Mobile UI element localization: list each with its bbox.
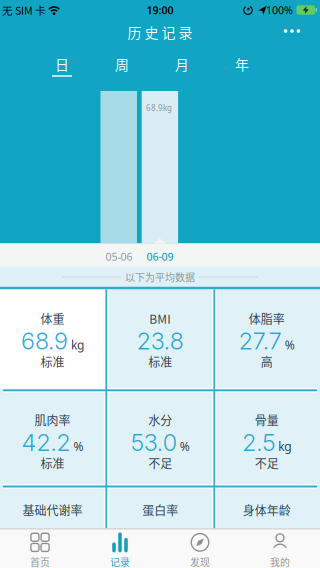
staticText: 月 [175,54,189,74]
staticText: 基础代谢率 [23,501,83,519]
staticText: 68.9 [21,327,68,355]
button[interactable]: 基础代谢率 [1,481,105,568]
staticText: 2.5 [242,428,275,457]
staticText: kg [275,438,291,454]
staticText: 高 [261,353,273,370]
staticText: 发现 [190,555,210,568]
button[interactable]: 首页 [8,531,72,568]
staticText: 水分 [148,411,172,429]
staticText: % [177,438,190,454]
staticText: 年 [235,54,249,74]
staticText: 蛋白率 [142,501,178,519]
staticText: % [71,438,84,454]
staticText: % [282,337,295,353]
staticText: 以下为平均数据 [125,270,195,284]
staticText: 不足 [255,454,279,472]
button[interactable]: 体重 [1,289,105,386]
button[interactable]: 肌肉率 [1,391,105,488]
staticText: 标准 [41,353,65,370]
button[interactable]: 水分 [108,391,212,488]
staticText: 周 [115,54,129,74]
button[interactable]: 蛋白率 [108,481,212,568]
staticText: 23.8 [137,327,184,355]
button[interactable]: 周 [102,50,142,80]
staticText: 身体年龄 [243,501,291,519]
button[interactable]: 月 [162,50,202,80]
button[interactable]: 体脂率 [215,289,319,386]
button[interactable]: 05-06 [99,246,139,266]
button[interactable]: 身体年龄 [215,481,319,568]
staticText: 06-09 [146,249,173,264]
staticText: 19:00 [146,3,173,17]
button[interactable]: 我的 [248,531,312,568]
staticText: 53.0 [131,428,177,457]
button[interactable]: BMI [108,289,212,386]
staticText: 42.2 [22,428,71,457]
button[interactable]: 记录 [88,531,152,568]
staticText: 我的 [270,555,290,568]
staticText: 标准 [41,454,65,472]
button[interactable]: 骨量 [215,391,319,488]
staticText: 无 SIM 卡 [2,2,46,18]
staticText: 标准 [148,353,172,370]
staticText: kg [68,337,84,353]
staticText: 日 [55,54,69,74]
button[interactable]: 发现 [168,531,232,568]
staticText: 历 史 记 录 [127,22,192,42]
staticText: 不足 [148,454,172,472]
staticText: 骨量 [255,411,279,429]
staticText: BMI [149,310,171,327]
staticText: 首页 [30,555,50,568]
staticText: 27.7 [239,327,282,355]
button[interactable]: More [275,17,309,45]
button[interactable]: 06-09 record [142,91,178,243]
staticText: 05-06 [105,249,132,264]
staticText: 体脂率 [249,310,285,327]
button[interactable]: 年 [222,50,262,80]
staticText: 记录 [110,555,130,568]
button[interactable]: 日 [42,50,82,80]
staticText: 100% [266,3,293,17]
staticText: 肌肉率 [35,411,71,429]
staticText: 体重 [41,310,65,327]
button[interactable]: 06-09 [140,246,180,266]
staticText: 68.9kg [146,102,172,113]
button[interactable]: 05-06 record [100,91,137,243]
